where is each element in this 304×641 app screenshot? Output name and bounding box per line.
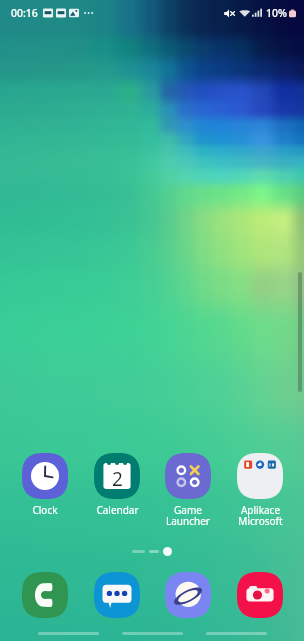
button[interactable]: Game Launcher	[154, 450, 222, 528]
staticText: 2	[112, 466, 123, 492]
button[interactable]: Phone	[15, 570, 75, 620]
staticText: Calendar	[96, 503, 139, 517]
button[interactable]: Clock	[11, 450, 79, 528]
button[interactable]: Internet	[158, 570, 218, 620]
button[interactable]: Back	[206, 626, 267, 640]
staticText: 10%	[266, 6, 287, 20]
staticText: Aplikace Microsoft	[238, 503, 283, 528]
button[interactable]: Home	[122, 626, 183, 640]
staticText: Clock	[32, 503, 58, 517]
button[interactable]: Recents	[38, 626, 99, 640]
button[interactable]: Aplikace Microsoft	[226, 450, 294, 528]
staticText: 00:16	[11, 6, 38, 20]
staticText: Game Launcher	[166, 503, 210, 528]
button[interactable]: Camera	[230, 570, 290, 620]
button[interactable]: Messages	[87, 570, 147, 620]
button[interactable]: 2	[83, 450, 151, 528]
